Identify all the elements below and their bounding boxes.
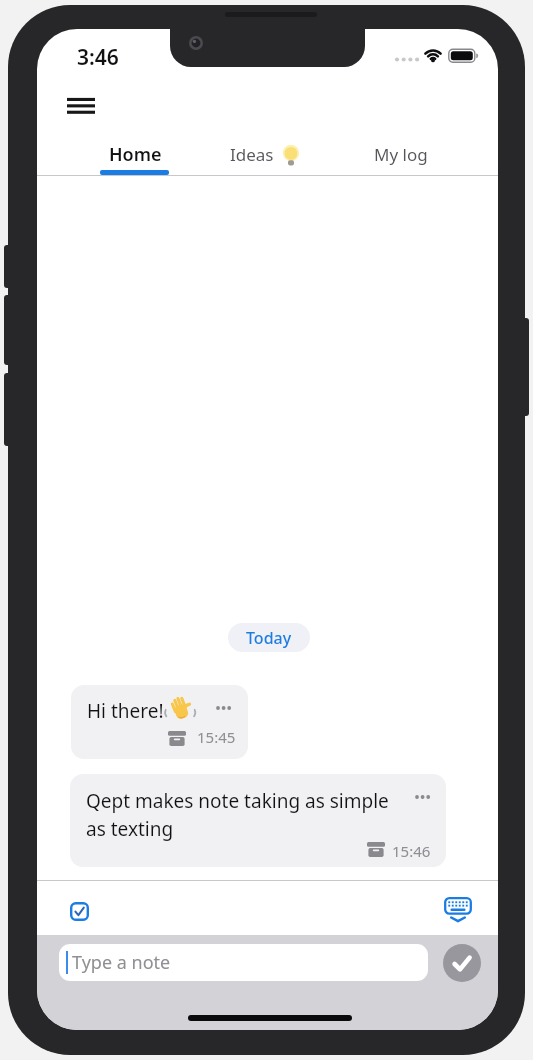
- staticText: Type a note: [72, 950, 171, 975]
- staticText: Today: [246, 627, 292, 649]
- button[interactable]: [443, 944, 481, 982]
- staticText: Ideas: [230, 143, 274, 166]
- staticText: 15:46: [392, 841, 431, 861]
- button[interactable]: Ideas: [192, 134, 312, 174]
- button[interactable]: Qept makes note taking as simple: [70, 774, 446, 867]
- staticText: My log: [374, 143, 428, 166]
- staticText: Hi there!: [87, 698, 164, 724]
- button[interactable]: My log: [361, 134, 441, 174]
- staticText: 3:46: [77, 43, 119, 67]
- button[interactable]: Hi there!: [71, 685, 248, 759]
- button[interactable]: Today: [228, 623, 310, 652]
- button[interactable]: [59, 891, 99, 931]
- staticText: Home: [109, 142, 162, 167]
- staticText: Qept makes note taking as simple: [86, 788, 389, 814]
- staticText: 15:45: [197, 727, 236, 747]
- button[interactable]: Home: [95, 134, 175, 174]
- button[interactable]: [437, 889, 479, 931]
- button[interactable]: Type a note: [59, 944, 428, 981]
- button[interactable]: [55, 82, 107, 130]
- staticText: as texting: [86, 816, 174, 842]
